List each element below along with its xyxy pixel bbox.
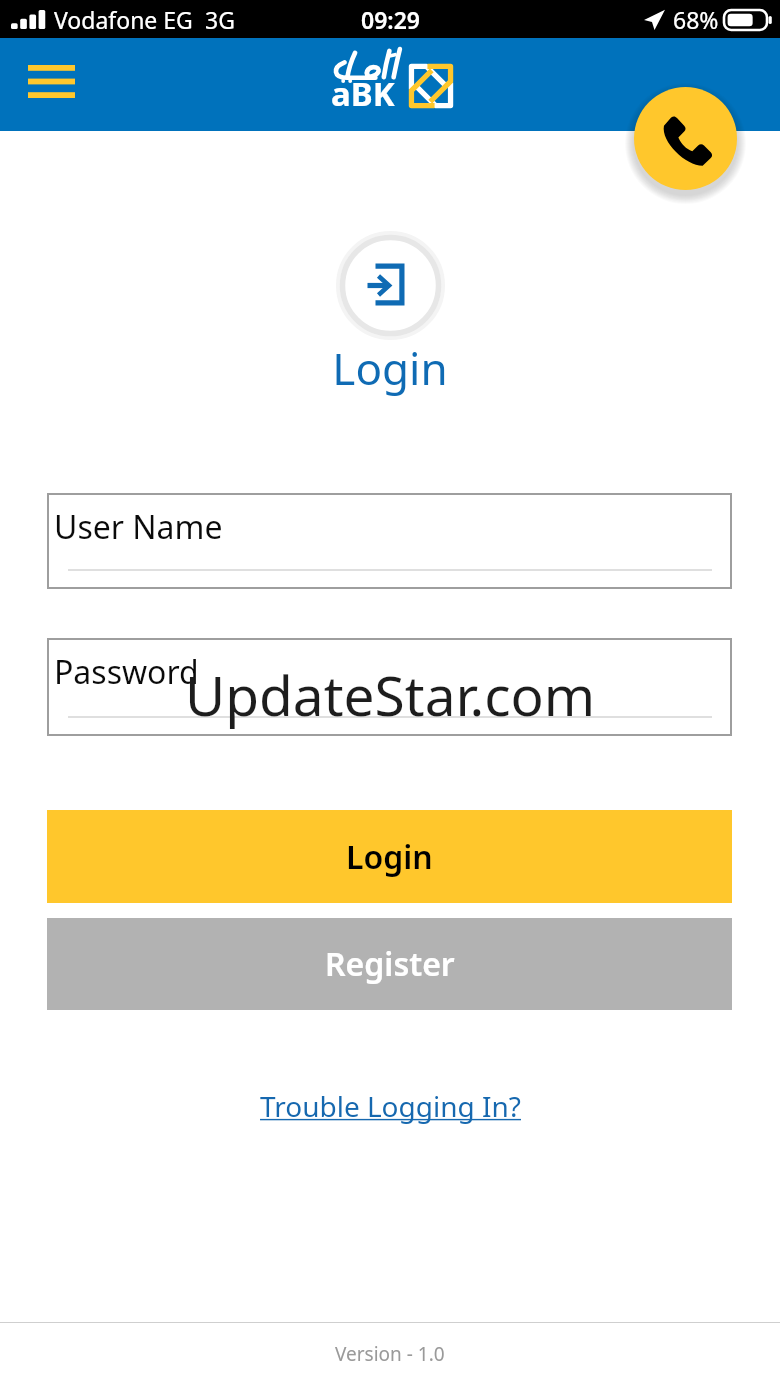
staticText: Vodafone EG [54, 4, 193, 35]
staticText: Login [332, 338, 448, 398]
staticText: UpdateStar.com [185, 657, 596, 732]
staticText: aBK [331, 71, 395, 116]
staticText: Login [346, 835, 433, 879]
button[interactable]: Trouble Logging In? [252, 1082, 529, 1130]
staticText: Register [325, 942, 455, 986]
button[interactable]: User Name [47, 493, 732, 589]
staticText: Version - 1.0 [335, 1341, 445, 1367]
button[interactable]: Password [47, 638, 732, 736]
button[interactable]: Register [47, 918, 732, 1010]
staticText: 68% [673, 4, 719, 35]
button[interactable]: Login [47, 810, 732, 903]
button[interactable]: Menu [19, 49, 84, 114]
staticText: User Name [54, 505, 223, 549]
button[interactable]: Call [634, 87, 737, 190]
staticText: Password [54, 650, 199, 694]
staticText: 3G [205, 4, 235, 35]
staticText: 09:29 [361, 4, 420, 35]
